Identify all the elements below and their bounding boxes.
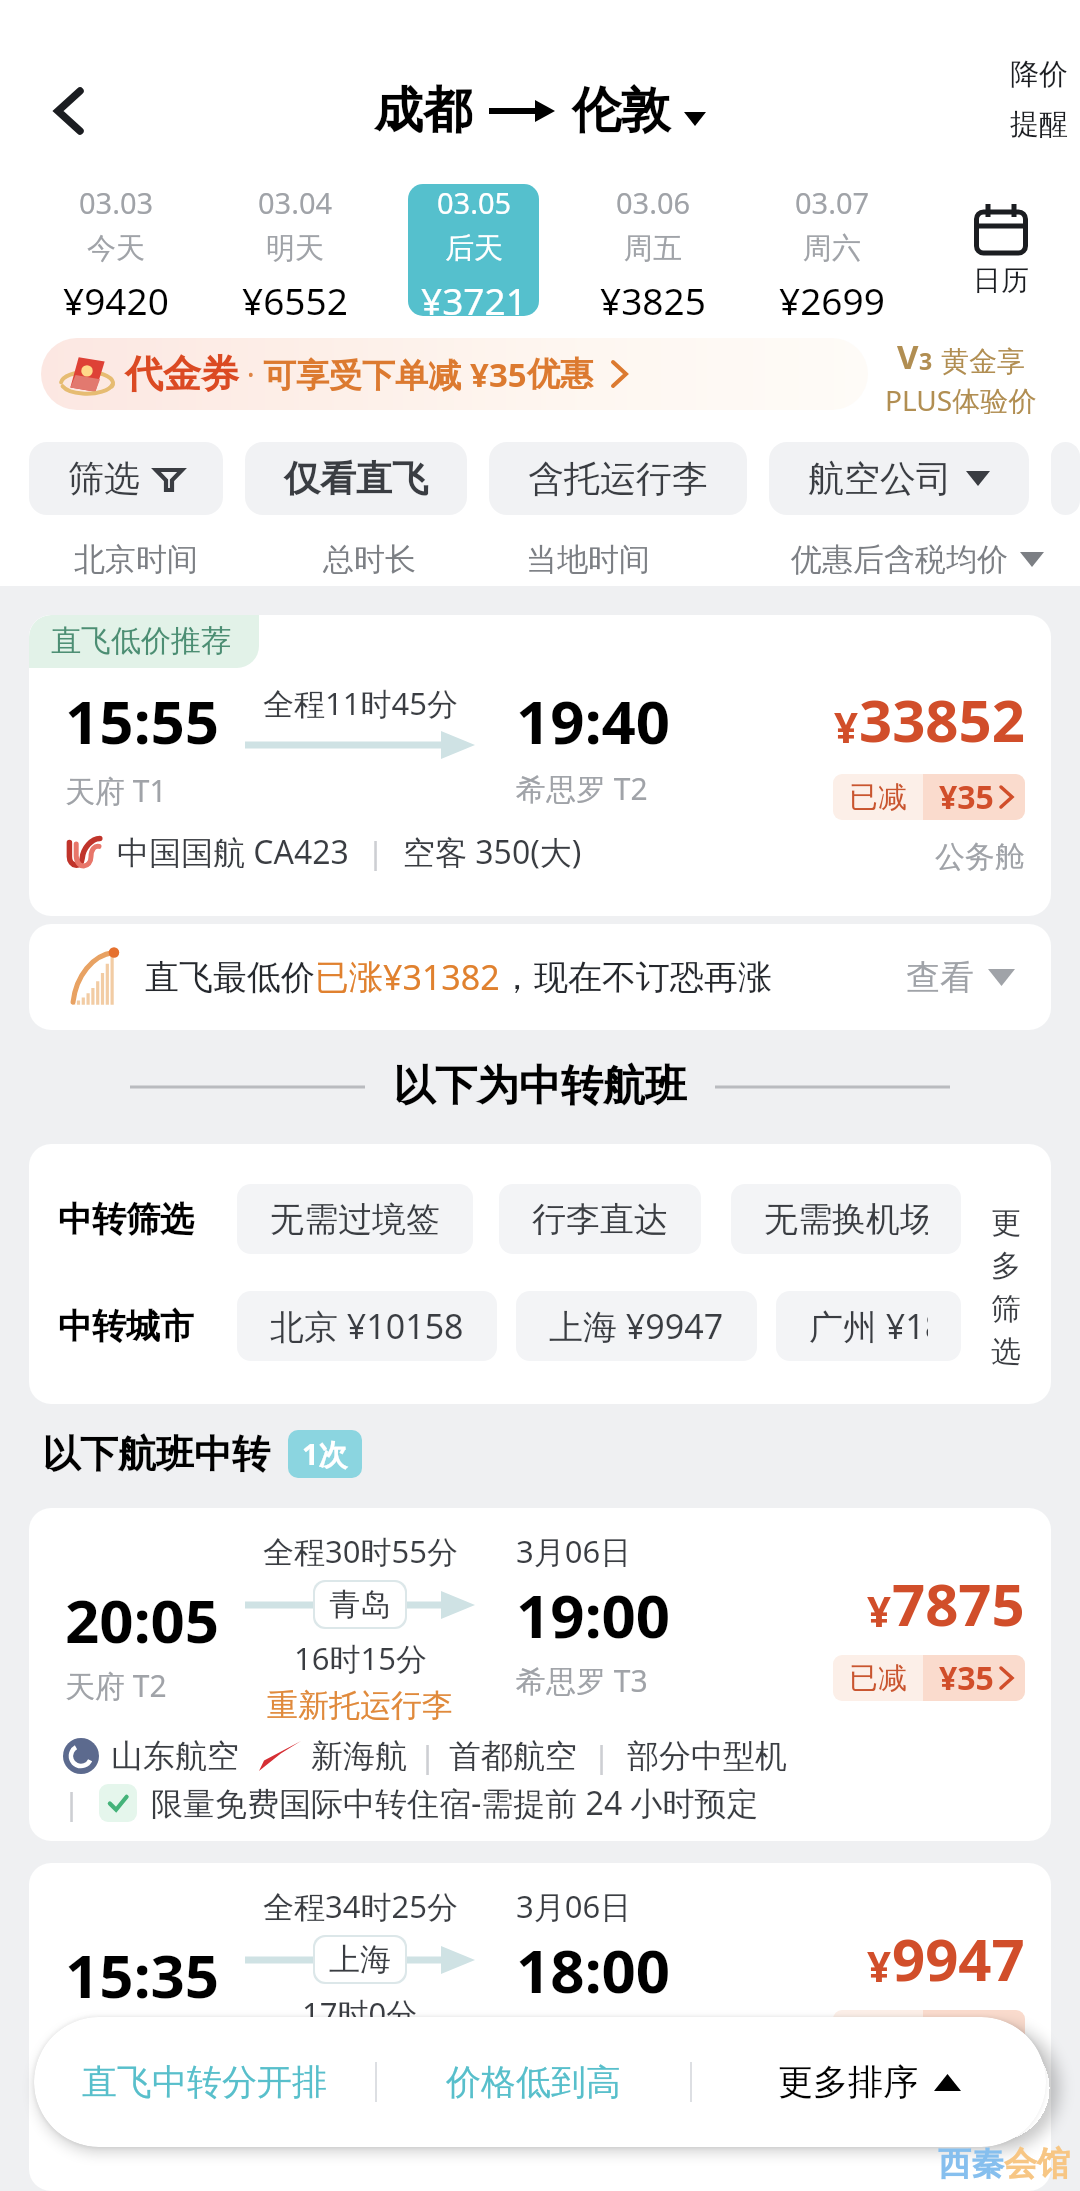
staticText: ¥35 (939, 775, 994, 819)
staticText: 中转城市 (58, 1305, 194, 1348)
staticText: 提醒 (1010, 106, 1068, 143)
staticText: 上海 ¥9947 (549, 1303, 724, 1349)
staticText: 希思罗 T3 (516, 1660, 648, 1701)
button[interactable]: 筛选 (29, 442, 223, 515)
staticText: 1次 (302, 1434, 348, 1474)
staticText: 西秦 (938, 2143, 1004, 2185)
staticText: 明天 (266, 230, 324, 267)
button[interactable]: 更 (961, 1204, 1051, 1371)
staticText: 筛 (991, 1290, 1021, 1328)
staticText: 航空公司 (808, 456, 952, 501)
staticText: 03.03 (79, 183, 154, 222)
button[interactable] (229, 184, 360, 316)
staticText: 北京时间 (74, 540, 198, 579)
staticText: 19:00 (516, 1574, 671, 1656)
button[interactable]: 航 (1051, 442, 1080, 515)
button[interactable]: 北京 ¥10158 (237, 1291, 497, 1361)
staticText: 19:40 (516, 680, 671, 762)
staticText: 15:35 (65, 1934, 220, 2016)
button[interactable]: 成都 (374, 80, 706, 142)
button[interactable]: 已减 (833, 1655, 1025, 1701)
button[interactable] (51, 184, 182, 316)
staticText: 会馆 (1004, 2143, 1070, 2185)
staticText: 降价 (1010, 56, 1068, 93)
button[interactable]: 仅看直飞 (245, 442, 467, 515)
button[interactable]: 价格低到高 (377, 2017, 690, 2147)
staticText: 全程34时25分 (263, 1885, 458, 1927)
staticText: 北京 ¥10158 (270, 1303, 464, 1349)
staticText: 部分中型机 (627, 1736, 787, 1776)
staticText: V (897, 334, 919, 379)
staticText: ¥3721 (421, 275, 527, 325)
button[interactable]: 已减 (833, 2010, 1025, 2056)
staticText: 山东航空 (111, 1736, 239, 1776)
staticText: 总时长 (323, 540, 416, 579)
button[interactable]: 直飞最低价 (29, 924, 1051, 1030)
button[interactable]: 直飞中转分开排 (34, 2017, 375, 2147)
staticText: 中转筛选 (58, 1198, 194, 1241)
staticText: 伦敦 (572, 80, 670, 142)
button[interactable]: 含托运行李 (489, 442, 747, 515)
staticText: 直飞最低价 (145, 956, 315, 999)
staticText: 天府 T1 (65, 770, 167, 811)
button[interactable]: 行李直达 (499, 1184, 701, 1254)
button[interactable]: 降价 (1006, 52, 1072, 147)
staticText: 成都 (374, 80, 472, 142)
staticText: ¥50 (939, 2011, 994, 2055)
button[interactable]: 已减 (833, 774, 1025, 820)
staticText: 全程30时55分 (263, 1530, 458, 1572)
button[interactable]: 航空公司 (769, 442, 1029, 515)
staticText: 无需过境签 (270, 1198, 440, 1241)
staticText: ¥9420 (63, 275, 169, 325)
staticText: 03.04 (258, 183, 333, 222)
staticText: ¥35 (470, 352, 527, 397)
staticText: 当地时间 (526, 540, 650, 579)
staticText: 33852 (859, 680, 1025, 759)
button[interactable]: 代金券 (41, 338, 868, 410)
staticText: 行李直达 (532, 1198, 668, 1241)
staticText: ¥3825 (600, 275, 706, 325)
staticText: | (593, 1735, 611, 1777)
staticText: 代金券 (125, 350, 239, 398)
staticText: 03.06 (616, 183, 691, 222)
staticText: | (367, 831, 385, 873)
staticText: 周六 (803, 230, 861, 267)
button[interactable]: 无需过境签 (237, 1184, 473, 1254)
button[interactable]: Back (26, 68, 112, 154)
button[interactable]: 直飞低价推荐 (29, 615, 1051, 916)
staticText: 3月06日 (516, 1530, 632, 1572)
staticText: 已减 (849, 2015, 907, 2052)
staticText: 查看 (906, 956, 974, 999)
staticText: 03.07 (795, 183, 870, 222)
staticText: 已减 (849, 1660, 907, 1697)
staticText: 重新托运行李 (267, 1686, 453, 1725)
staticText: ¥ (867, 1937, 892, 1994)
staticText: 20:05 (65, 1579, 220, 1661)
staticText: PLUS体验价 (885, 381, 1037, 414)
button[interactable] (766, 184, 897, 316)
button[interactable]: 无需换机场 (731, 1184, 961, 1254)
staticText: 优惠 (527, 353, 593, 395)
staticText: 18:00 (516, 1929, 671, 2011)
button[interactable]: 查看 (900, 950, 1021, 1005)
staticText: 新海航 (311, 1736, 407, 1776)
staticText: 更多排序 (778, 2060, 918, 2104)
staticText: 3月06日 (516, 1885, 632, 1927)
staticText: 03.05 (437, 183, 512, 222)
button[interactable]: 广州 ¥185 (776, 1291, 961, 1361)
button[interactable]: 上海 ¥9947 (516, 1291, 757, 1361)
button[interactable]: 日历 (921, 178, 1080, 322)
button[interactable] (587, 184, 718, 316)
staticText: 黄金享 (941, 344, 1025, 379)
staticText: 3 (919, 345, 933, 376)
staticText: 全程11时45分 (263, 682, 458, 724)
button[interactable]: 20:05 (29, 1508, 1051, 1841)
button[interactable]: 更多排序 (692, 2017, 1046, 2147)
staticText: 公务舱 (935, 838, 1025, 876)
button[interactable]: 15:35 (29, 1863, 1051, 2191)
staticText: 天府 T2 (65, 1665, 167, 1706)
staticText: 更 (991, 1204, 1021, 1242)
staticText: 青岛 (329, 1585, 391, 1624)
button[interactable] (408, 184, 539, 316)
